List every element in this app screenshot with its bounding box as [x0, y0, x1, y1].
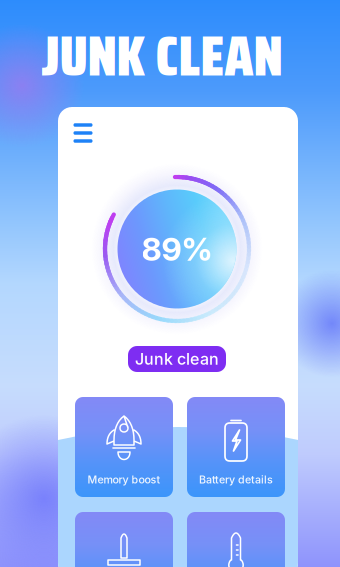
- staticText: 89%: [141, 230, 212, 268]
- button[interactable]: Menu: [64, 114, 102, 152]
- button[interactable]: CPU cooler: [187, 512, 285, 567]
- staticText: JUNK CLEAN: [41, 12, 282, 100]
- button[interactable]: Battery details: [187, 397, 285, 497]
- button[interactable]: Junk files: [75, 512, 173, 567]
- staticText: Junk clean: [135, 349, 219, 369]
- staticText: Battery details: [199, 473, 273, 486]
- staticText: Memory boost: [87, 473, 160, 486]
- button[interactable]: Memory boost: [75, 397, 173, 497]
- button[interactable]: Junk clean: [128, 346, 226, 372]
